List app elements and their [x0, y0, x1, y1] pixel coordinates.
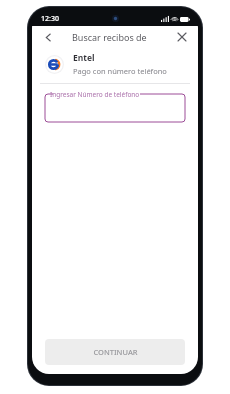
- staticText: 12:30: [41, 14, 59, 24]
- staticText: Entel: [73, 52, 95, 64]
- button[interactable]: Back: [40, 29, 56, 45]
- button[interactable]: Entel: [32, 48, 198, 80]
- button[interactable]: Ingresar Número de teléfono: [45, 94, 185, 122]
- staticText: Pago con número teléfono: [73, 66, 167, 76]
- staticText: CONTINUAR: [93, 347, 138, 357]
- staticText: Ingresar Número de teléfono: [50, 90, 140, 99]
- staticText: Buscar recibos de: [72, 31, 147, 43]
- button[interactable]: Close: [174, 29, 190, 45]
- button[interactable]: CONTINUAR: [45, 339, 185, 365]
